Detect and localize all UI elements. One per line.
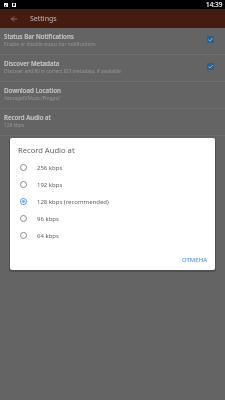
button[interactable]: Record Audio at <box>0 109 225 135</box>
button[interactable]: Discover Metadata <box>0 55 225 81</box>
staticText: Enable or disable status bar notificatio… <box>4 41 96 48</box>
staticText: 64 kbps <box>37 232 59 240</box>
staticText: Discover and fill in correct ID3 metadat… <box>4 68 121 75</box>
button[interactable]: Status Bar Notifications <box>0 28 225 54</box>
staticText: ОТМЕНА <box>182 256 208 264</box>
staticText: Status Bar Notifications <box>4 32 74 40</box>
staticText: Record Audio at <box>18 145 75 155</box>
staticText: 128 kbps (recommended) <box>37 198 109 206</box>
staticText: 96 kbps <box>37 215 59 223</box>
staticText: Record Audio at <box>4 113 51 121</box>
staticText: Download Location <box>4 86 61 94</box>
staticText: 14:39 <box>206 0 223 9</box>
button[interactable]: Download Location <box>0 82 225 108</box>
staticText: 128 kbps <box>4 122 25 129</box>
button[interactable]: 192 kbps <box>10 176 215 193</box>
staticText: 192 kbps <box>37 181 63 189</box>
button[interactable]: 256 kbps <box>10 159 215 176</box>
button[interactable]: 64 kbps <box>10 227 215 244</box>
staticText: Discover Metadata <box>4 59 60 67</box>
button[interactable]: Back <box>5 10 23 28</box>
staticText: /storage0/Music/Pingpo/ <box>4 95 61 102</box>
button[interactable]: 96 kbps <box>10 210 215 227</box>
staticText: Settings <box>30 14 57 24</box>
staticText: 256 kbps <box>37 164 63 172</box>
button[interactable]: 128 kbps (recommended) <box>10 193 215 210</box>
button[interactable]: ОТМЕНА <box>172 252 215 270</box>
